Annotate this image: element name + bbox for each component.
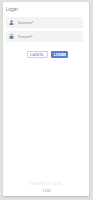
- staticText: Login: [6, 6, 18, 12]
- staticText: POWERED BY ACME: [30, 182, 62, 186]
- button[interactable]: CANCEL: [27, 51, 48, 58]
- staticText: Username*: [18, 21, 34, 25]
- staticText: 1.0.0: [42, 188, 51, 193]
- button[interactable]: Password*: [6, 31, 83, 42]
- staticText: Password*: [18, 35, 33, 39]
- staticText: CANCEL: [30, 52, 45, 57]
- staticText: LOGIN: [54, 52, 66, 57]
- button[interactable]: Username*: [6, 17, 83, 28]
- button[interactable]: LOGIN: [51, 51, 68, 58]
